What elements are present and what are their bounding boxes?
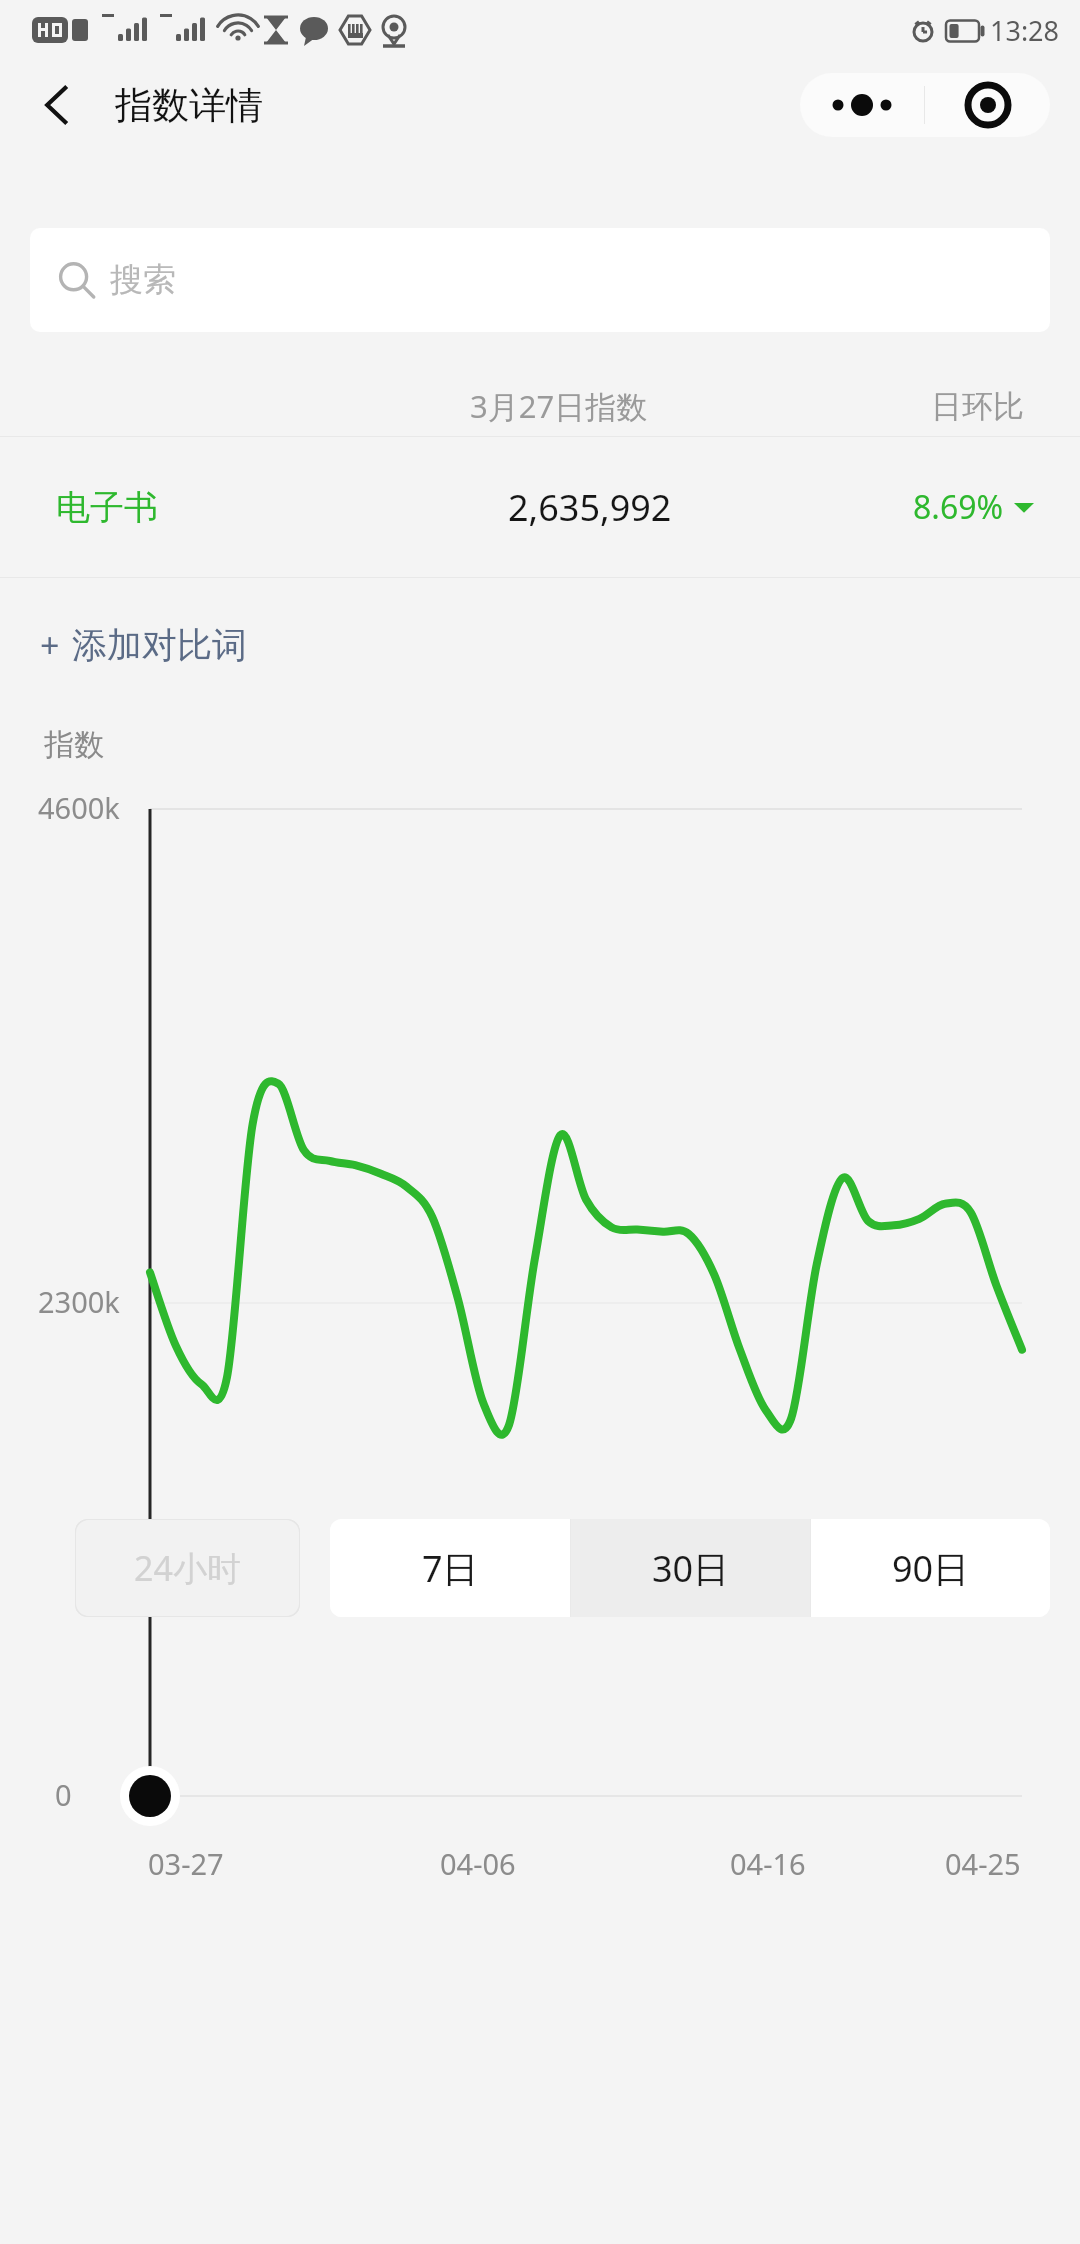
button[interactable]: 7日 — [330, 1519, 570, 1617]
staticText: 2300k — [38, 1282, 120, 1321]
staticText: 3月27日指数 — [470, 385, 648, 427]
staticText: 添加对比词 — [72, 623, 247, 667]
button[interactable]: 搜索 — [30, 228, 1050, 332]
button[interactable]: 更多 — [800, 73, 924, 137]
staticText: + — [40, 622, 60, 668]
staticText: 搜索 — [110, 259, 176, 301]
staticText: 8.69% — [913, 485, 1004, 529]
staticText: 4600k — [38, 788, 120, 827]
staticText: 0 — [55, 1775, 72, 1814]
staticText: 90日 — [892, 1544, 970, 1593]
staticText: 电子书 — [56, 486, 158, 529]
staticText: 04-06 — [440, 1844, 516, 1883]
button[interactable]: 30日 — [571, 1519, 810, 1617]
staticText: 24小时 — [134, 1545, 241, 1591]
button[interactable]: + — [40, 622, 247, 668]
button[interactable]: 24小时 — [75, 1519, 300, 1617]
staticText: 30日 — [652, 1544, 730, 1593]
button[interactable]: 关闭 — [925, 73, 1050, 137]
button[interactable]: 90日 — [811, 1519, 1050, 1617]
staticText: 03-27 — [148, 1844, 224, 1883]
staticText: 日环比 — [931, 387, 1024, 426]
button[interactable]: 返回 — [22, 74, 84, 136]
button[interactable]: 电子书 — [0, 437, 1080, 577]
staticText: 指数 — [44, 726, 104, 764]
staticText: 7日 — [422, 1544, 479, 1593]
staticText: 指数详情 — [115, 82, 263, 129]
staticText: 2,635,992 — [508, 483, 672, 532]
staticText: 04-25 — [945, 1844, 1021, 1883]
staticText: 13:28 — [990, 12, 1060, 49]
staticText: 04-16 — [730, 1844, 806, 1883]
